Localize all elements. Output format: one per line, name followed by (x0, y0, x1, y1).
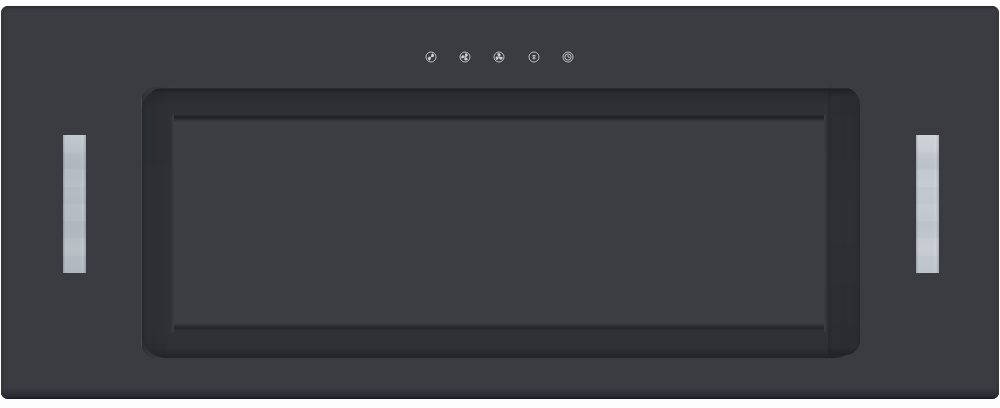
button[interactable]: Fan speed 3 (493, 51, 505, 63)
button[interactable]: Fan speed 1 (425, 51, 437, 63)
button[interactable]: Fan speed 2 (459, 51, 471, 63)
button[interactable]: Timer (562, 51, 574, 63)
button[interactable]: Light (528, 51, 540, 63)
